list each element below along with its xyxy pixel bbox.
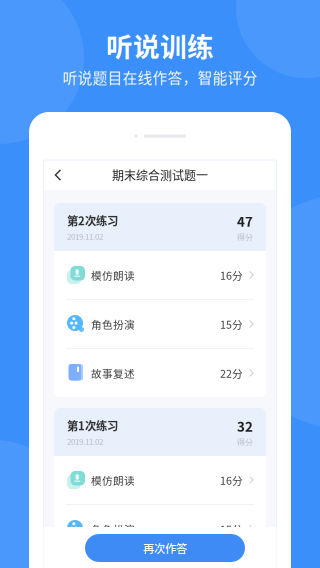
button[interactable]: 角色扮演 [54, 300, 266, 348]
staticText: 听说训练 [106, 26, 214, 64]
staticText: 得分 [237, 231, 253, 243]
staticText: 16分 [220, 267, 243, 283]
staticText: 期末综合测试题一 [112, 166, 208, 184]
staticText: 32 [237, 416, 253, 436]
button[interactable]: 模仿朗读 [54, 251, 266, 299]
staticText: 角色扮演 [91, 521, 135, 537]
staticText: 听说题目在线作答，智能评分 [62, 66, 257, 88]
staticText: 角色扮演 [91, 316, 135, 332]
staticText: 故事复述 [91, 365, 135, 381]
button[interactable]: 再次作答 [85, 534, 245, 562]
staticText: 再次作答 [143, 540, 187, 556]
staticText: 16分 [220, 472, 243, 488]
staticText: 第1次练习 [67, 417, 118, 433]
staticText: 22分 [220, 365, 243, 381]
staticText: 第2次练习 [67, 212, 118, 228]
staticText: 15分 [220, 521, 243, 537]
button[interactable]: 故事复述 [54, 349, 266, 397]
staticText: 47 [237, 211, 253, 231]
button[interactable]: Back [43, 160, 70, 190]
staticText: 得分 [237, 436, 253, 448]
staticText: 模仿朗读 [91, 472, 135, 488]
button[interactable]: 故事复述 [54, 554, 266, 568]
staticText: 2019.11.02 [67, 435, 103, 447]
staticText: 15分 [220, 316, 243, 332]
staticText: 模仿朗读 [91, 267, 135, 283]
button[interactable]: 模仿朗读 [54, 456, 266, 504]
button[interactable]: 角色扮演 [54, 505, 266, 553]
staticText: 2019.11.02 [67, 230, 103, 242]
